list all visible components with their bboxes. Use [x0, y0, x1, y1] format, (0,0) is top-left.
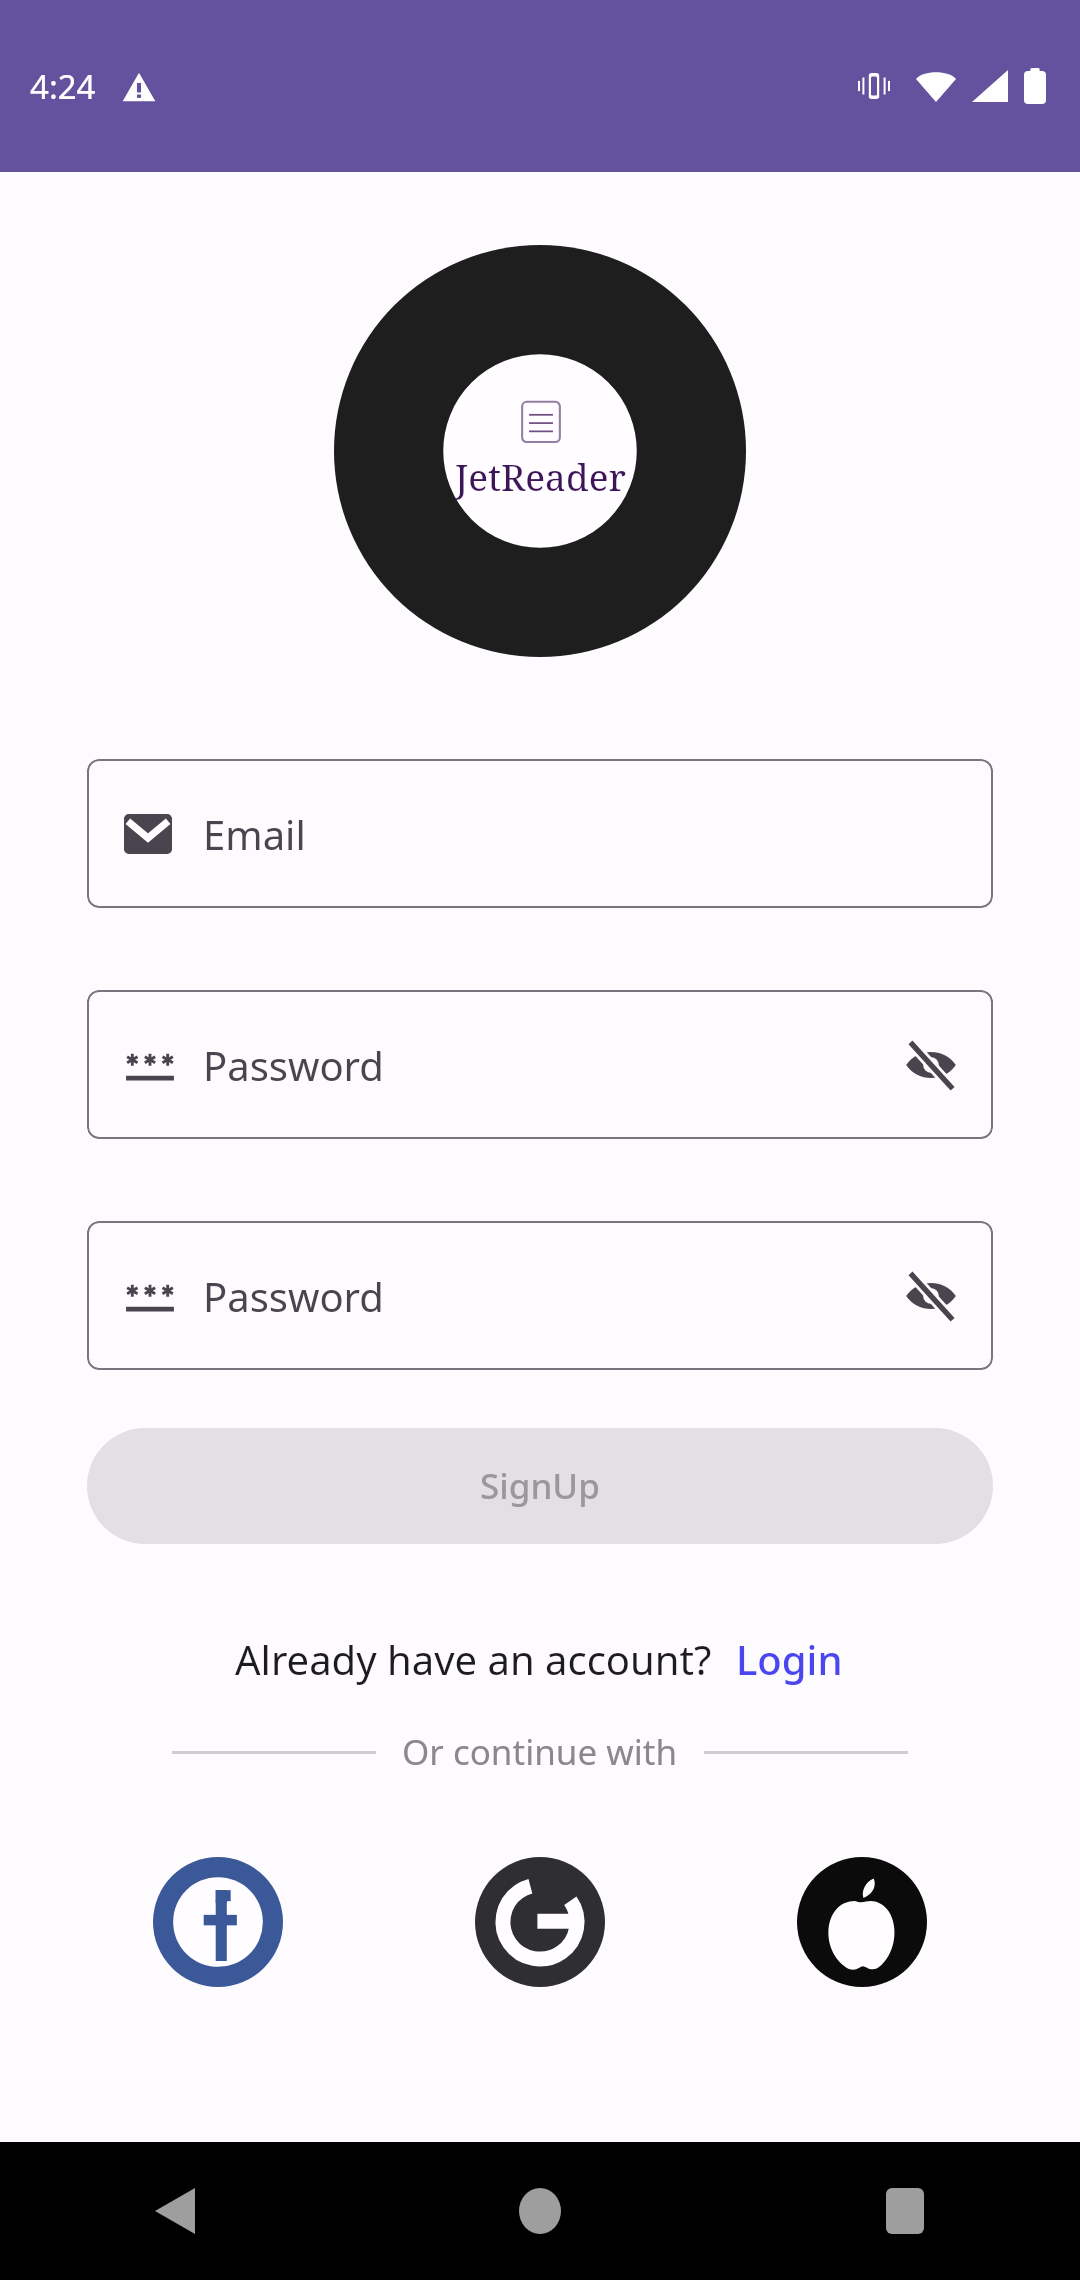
- staticText: 4:24: [30, 64, 96, 109]
- button[interactable]: Password: [87, 1221, 993, 1370]
- staticText: Email: [203, 807, 306, 861]
- button[interactable]: Email: [87, 759, 993, 908]
- button[interactable]: Recent apps: [850, 2156, 960, 2266]
- staticText: Login: [736, 1632, 843, 1686]
- button[interactable]: Sign in with Google: [472, 1854, 608, 1990]
- staticText: JetReader: [455, 451, 626, 501]
- staticText: Password: [203, 1038, 384, 1092]
- staticText: Already have an account?: [235, 1632, 712, 1686]
- staticText: SignUp: [480, 1462, 600, 1510]
- button[interactable]: Sign in with Facebook: [150, 1854, 286, 1990]
- button[interactable]: Toggle password visibility: [883, 1017, 979, 1113]
- button[interactable]: SignUp: [87, 1428, 993, 1544]
- button[interactable]: Home: [485, 2156, 595, 2266]
- button[interactable]: Login: [734, 1630, 845, 1688]
- staticText: Password: [203, 1269, 384, 1323]
- button[interactable]: Password: [87, 990, 993, 1139]
- button[interactable]: Sign in with Apple: [794, 1854, 930, 1990]
- staticText: Or continue with: [402, 1728, 678, 1776]
- button[interactable]: Back: [120, 2156, 230, 2266]
- button[interactable]: Toggle password visibility: [883, 1248, 979, 1344]
